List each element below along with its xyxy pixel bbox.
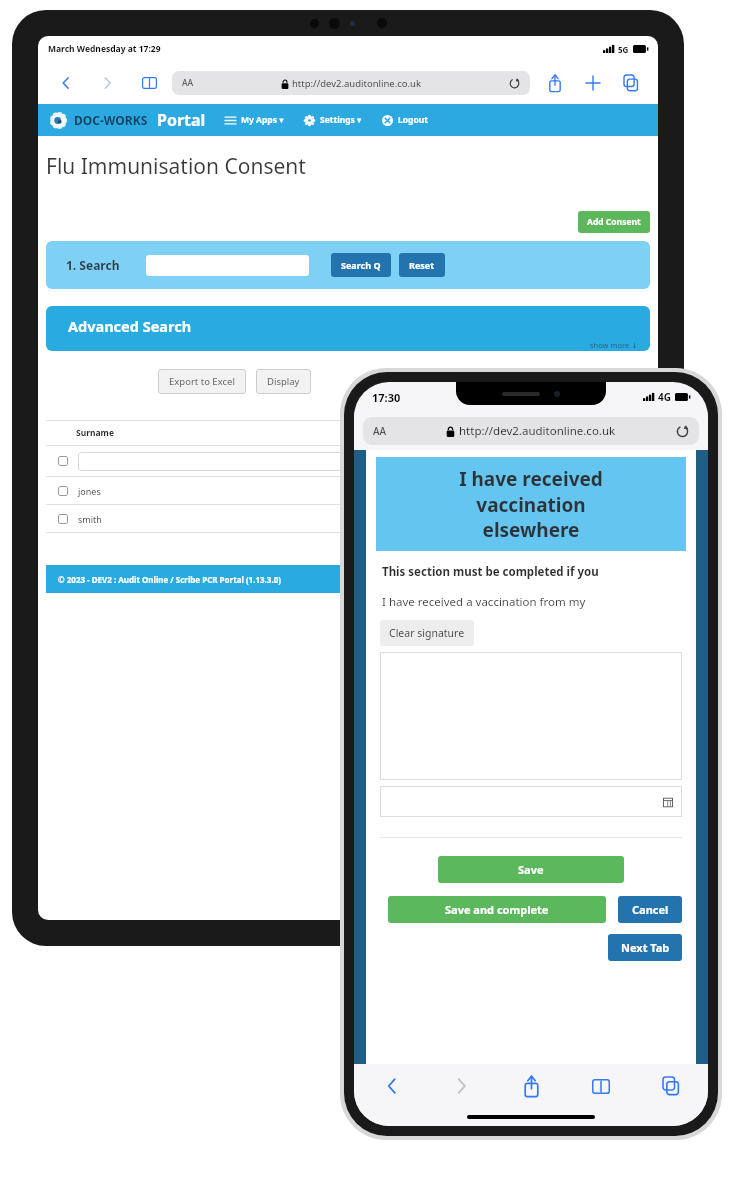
staticText: http://dev2.auditonline.co.uk — [292, 77, 422, 90]
button[interactable]: Save and complete — [388, 896, 606, 923]
staticText: Portal — [157, 109, 206, 131]
staticText: Cancel — [632, 902, 669, 917]
staticText: http://dev2.auditonline.co.uk — [459, 423, 616, 439]
button[interactable]: My Apps ▾ — [222, 111, 287, 129]
staticText: Advanced Search — [68, 316, 192, 336]
button[interactable]: AA — [172, 71, 530, 95]
staticText: 5G — [618, 44, 629, 55]
button[interactable]: AA — [363, 417, 699, 445]
button[interactable]: Logout — [379, 111, 431, 129]
button[interactable]: Advanced Search — [46, 306, 650, 351]
staticText: DOC-WORKS — [74, 112, 148, 128]
staticText: smith — [78, 513, 102, 525]
button[interactable]: Bookmarks — [136, 70, 162, 96]
button[interactable]: Forward — [446, 1071, 476, 1101]
staticText: 4G — [658, 390, 671, 404]
staticText: March Wednesday at 17:29 — [48, 43, 161, 55]
staticText: show more ↓ — [590, 340, 638, 350]
button[interactable] — [604, 452, 644, 471]
staticText: My Apps ▾ — [241, 114, 284, 126]
staticText: ⇕ — [578, 429, 584, 437]
button[interactable] — [78, 452, 594, 471]
button[interactable]: Add Consent — [578, 211, 650, 233]
button[interactable]: Settings ▾ — [301, 111, 365, 129]
button[interactable]: Back — [52, 70, 78, 96]
staticText: Export to Excel — [169, 375, 235, 388]
staticText: AA — [373, 424, 387, 438]
staticText: Clear signature — [389, 626, 465, 640]
staticText: Surname — [76, 427, 114, 439]
button[interactable]: Select row — [58, 514, 68, 524]
button[interactable]: Select row — [46, 505, 650, 532]
button[interactable]: Bookmarks — [586, 1071, 616, 1101]
button[interactable]: Tabs — [618, 70, 644, 96]
staticText: Search Q — [341, 259, 381, 271]
staticText: 1. Search — [66, 257, 120, 273]
staticText: Flu Immunisation Consent — [46, 152, 306, 181]
button[interactable]: Share — [516, 1071, 546, 1101]
staticText: Next Tab — [621, 940, 670, 955]
button[interactable]: Clear signature — [380, 620, 474, 646]
staticText: Save and complete — [445, 902, 549, 917]
button[interactable] — [146, 255, 309, 276]
button[interactable] — [380, 786, 682, 817]
staticText: Logout — [398, 114, 428, 126]
staticText: Display — [267, 375, 300, 388]
button[interactable]: Next Tab — [608, 934, 682, 961]
staticText: © 2023 - DEV2 : Audit Online / Scribe PC… — [58, 574, 281, 585]
staticText: jones — [78, 485, 101, 497]
button[interactable]: Back — [376, 1071, 406, 1101]
staticText: I have received a vaccination from my — [382, 594, 586, 610]
button[interactable]: Export to Excel — [158, 369, 246, 394]
staticText: I have received vaccination elsewhere — [459, 466, 603, 542]
button[interactable]: Display — [256, 369, 311, 394]
staticText: Reset — [409, 259, 435, 271]
button[interactable]: New tab — [580, 70, 606, 96]
button[interactable] — [380, 652, 682, 780]
staticText: This section must be completed if you — [382, 564, 599, 580]
button[interactable]: Select row — [46, 477, 650, 504]
button[interactable]: Select row — [58, 456, 68, 466]
staticText: Add Consent — [587, 216, 641, 228]
button[interactable]: Save — [438, 856, 624, 883]
button[interactable]: Share — [542, 70, 568, 96]
button[interactable]: Select row — [58, 486, 68, 496]
button[interactable]: Cancel — [618, 896, 682, 923]
button[interactable]: Reset — [399, 253, 445, 277]
button[interactable]: Tabs — [656, 1071, 686, 1101]
staticText: Save — [518, 862, 544, 877]
button[interactable]: Search Q — [331, 253, 391, 277]
staticText: Date — [605, 427, 626, 439]
staticText: AA — [182, 77, 194, 89]
staticText: Settings ▾ — [320, 114, 362, 126]
button[interactable]: Forward — [94, 70, 120, 96]
staticText: 17:30 — [372, 390, 401, 405]
